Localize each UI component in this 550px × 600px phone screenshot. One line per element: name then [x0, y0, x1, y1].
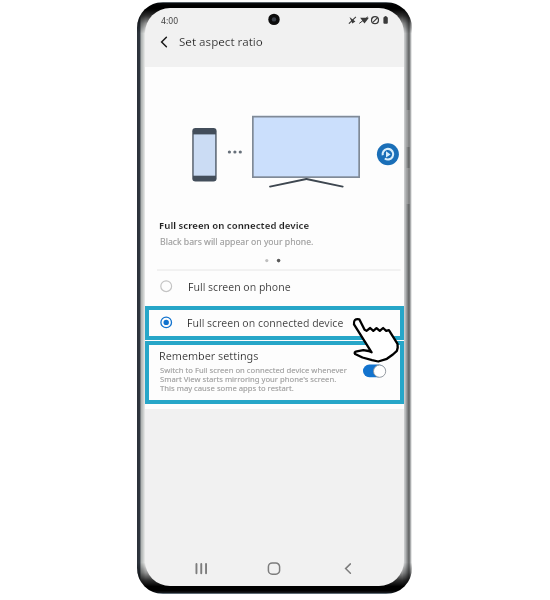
staticText: 4:00 — [161, 15, 179, 27]
staticText: Remember settings — [159, 348, 259, 363]
staticText: Full screen on connected device — [159, 219, 310, 232]
staticText: Full screen on connected device — [187, 316, 344, 330]
staticText: Switch to Full screen on connected devic… — [160, 365, 347, 394]
button[interactable] — [149, 345, 400, 400]
staticText: Set aspect ratio — [179, 34, 263, 50]
staticText: Black bars will appear on your phone. — [160, 236, 314, 248]
staticText: Full screen on phone — [188, 280, 291, 294]
button[interactable]: Navigate up — [153, 31, 175, 53]
button[interactable] — [145, 272, 404, 300]
button[interactable] — [149, 310, 400, 336]
